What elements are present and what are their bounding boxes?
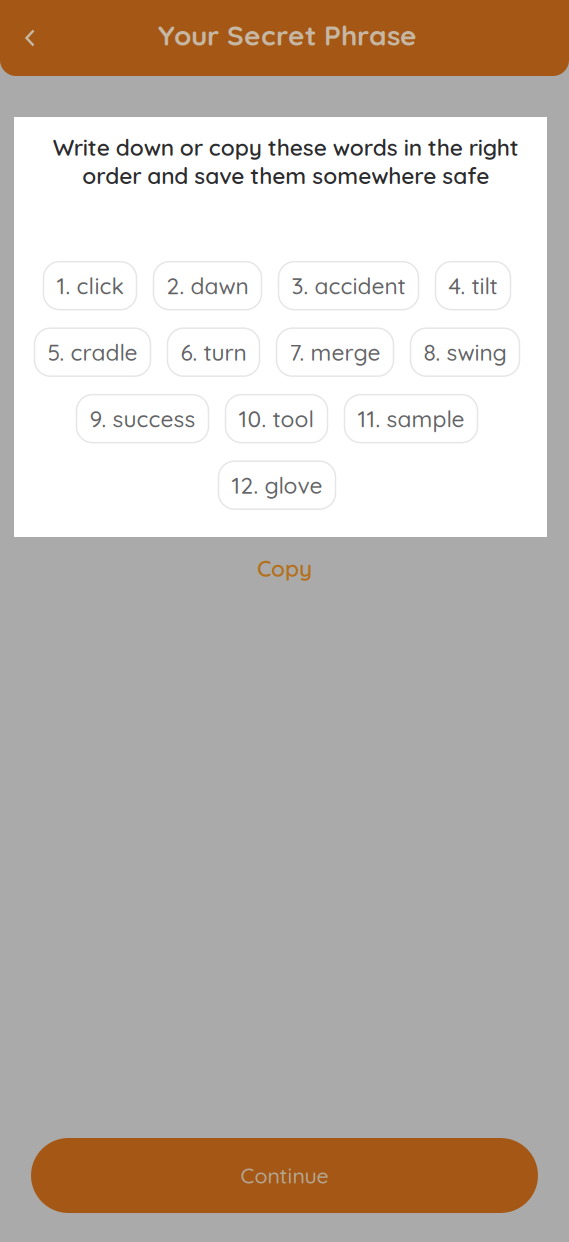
button[interactable]: 8. swing bbox=[410, 328, 519, 376]
staticText: 12. glove bbox=[231, 471, 322, 499]
button[interactable]: 4. tilt bbox=[435, 262, 510, 310]
staticText: 4. tilt bbox=[448, 271, 497, 300]
staticText: 2. dawn bbox=[166, 271, 248, 300]
button[interactable]: 6. turn bbox=[167, 328, 259, 376]
button[interactable]: 2. dawn bbox=[153, 262, 261, 310]
button[interactable]: 12. glove bbox=[218, 461, 335, 509]
staticText: 11. sample bbox=[357, 404, 464, 433]
button[interactable]: 1. click bbox=[43, 262, 136, 310]
staticText: Write down or copy these words in the ri… bbox=[52, 133, 518, 190]
button[interactable]: 3. accident bbox=[278, 262, 418, 310]
staticText: 7. merge bbox=[289, 338, 380, 366]
staticText: 5. cradle bbox=[47, 338, 137, 366]
button[interactable]: 10. tool bbox=[225, 395, 327, 443]
button[interactable]: 11. sample bbox=[344, 395, 477, 443]
staticText: Copy bbox=[257, 554, 312, 582]
button[interactable]: 9. success bbox=[76, 395, 208, 443]
staticText: 10. tool bbox=[238, 404, 314, 433]
staticText: Your Secret Phrase bbox=[158, 17, 417, 52]
staticText: 1. click bbox=[56, 271, 123, 300]
button[interactable]: 5. cradle bbox=[34, 328, 150, 376]
button[interactable]: Back bbox=[5, 13, 55, 63]
button[interactable]: Continue bbox=[31, 1138, 538, 1213]
staticText: Continue bbox=[240, 1162, 328, 1189]
staticText: 8. swing bbox=[423, 338, 506, 366]
staticText: 3. accident bbox=[291, 271, 405, 300]
staticText: 6. turn bbox=[180, 338, 246, 366]
staticText: 9. success bbox=[89, 404, 195, 433]
button[interactable]: Copy bbox=[229, 546, 340, 590]
button[interactable]: 7. merge bbox=[276, 328, 393, 376]
